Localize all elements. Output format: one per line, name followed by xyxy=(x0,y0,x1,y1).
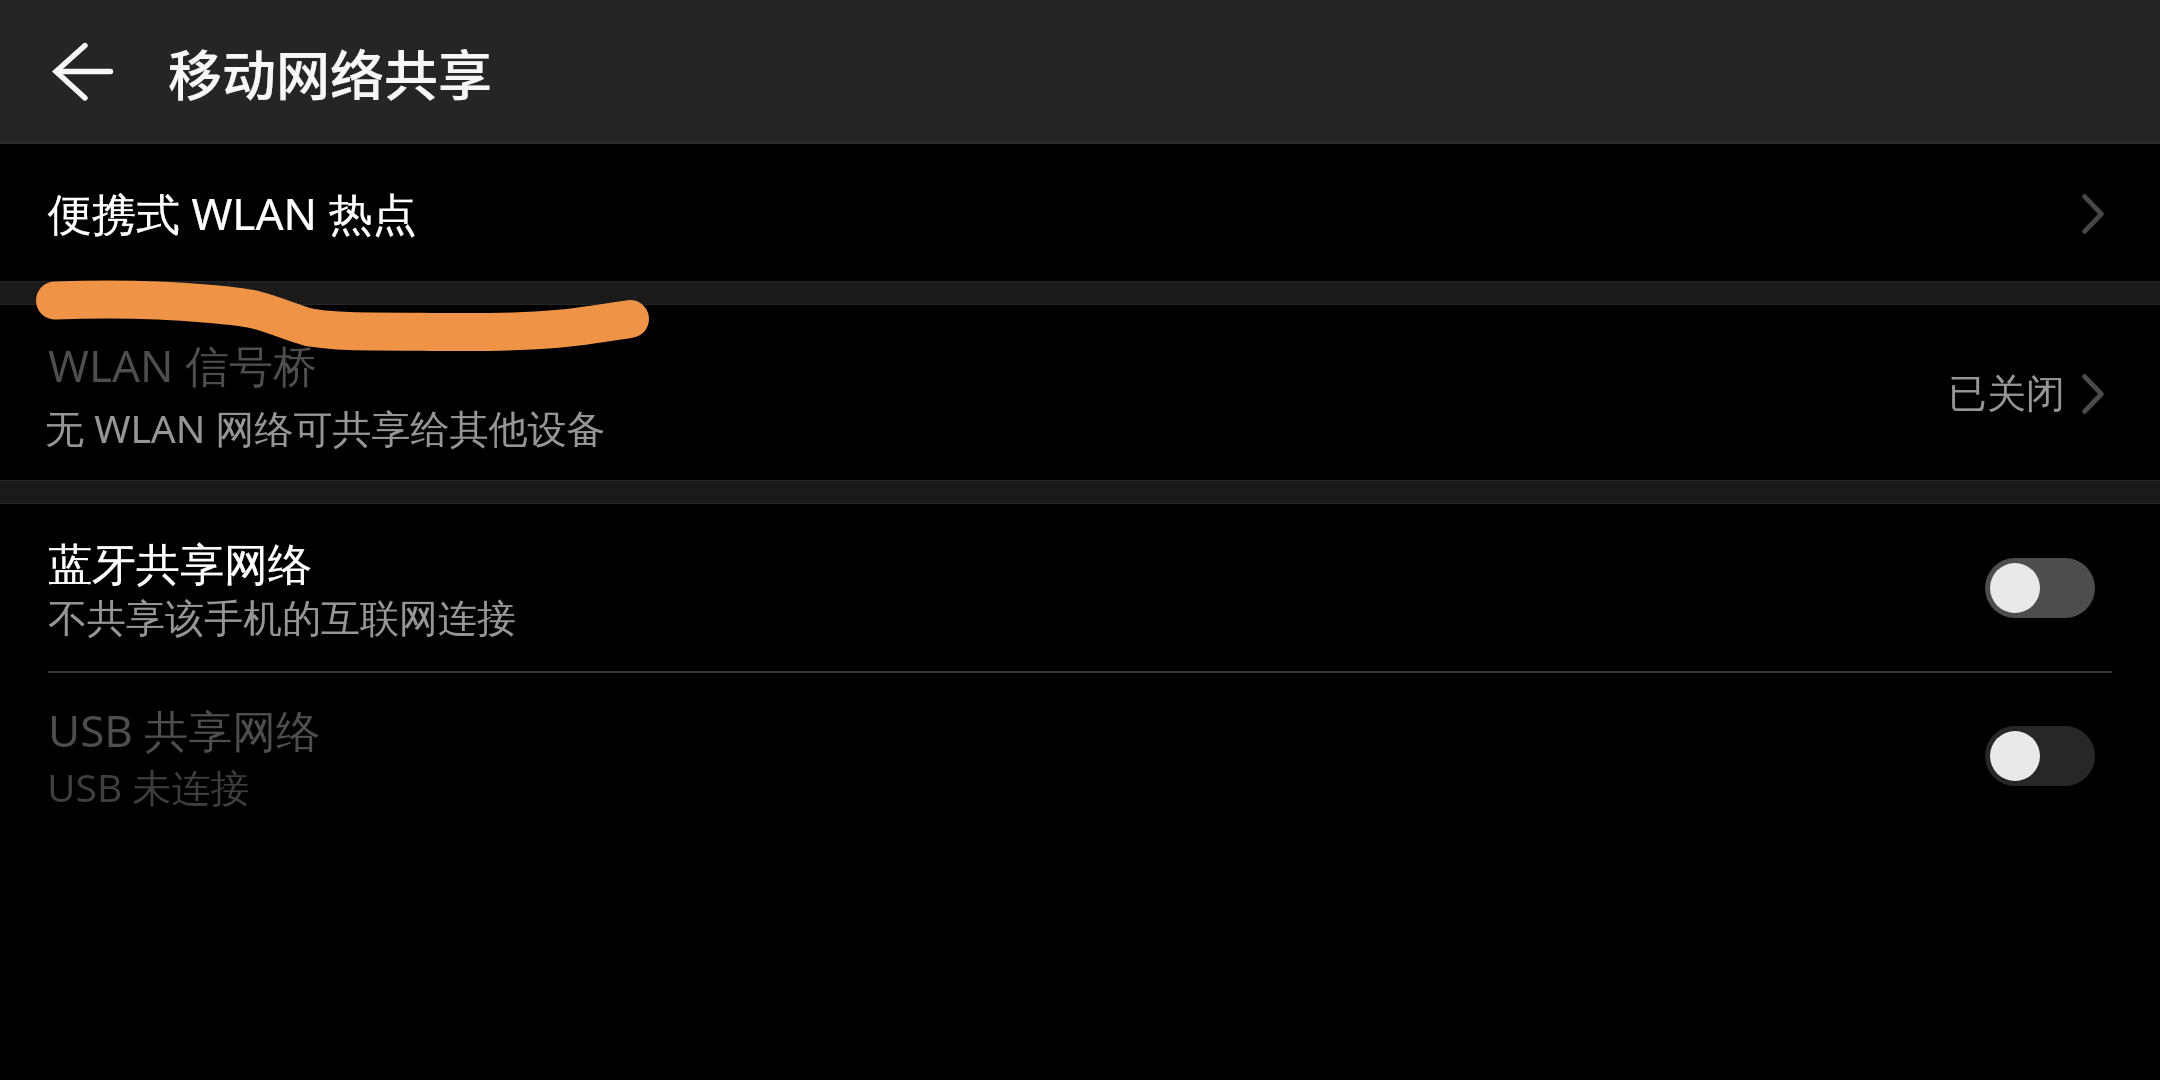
staticText: WLAN 信号桥 xyxy=(48,335,317,395)
staticText: 蓝牙共享网络 xyxy=(48,538,312,593)
staticText: 无 WLAN 网络可共享给其他设备 xyxy=(45,401,606,454)
button[interactable]: Back xyxy=(26,12,146,132)
button[interactable]: Toggle xyxy=(1985,558,2095,618)
staticText: 便携式 WLAN 热点 xyxy=(48,183,417,243)
button[interactable] xyxy=(0,305,2160,480)
staticText: USB 未连接 xyxy=(47,760,250,813)
button[interactable]: Toggle xyxy=(1985,726,2095,786)
staticText: 不共享该手机的互联网连接 xyxy=(48,594,516,643)
button[interactable] xyxy=(0,144,2160,281)
button[interactable] xyxy=(0,504,2160,672)
staticText: 移动网络共享 xyxy=(168,33,492,111)
staticText: 已关闭 xyxy=(1948,369,2065,418)
staticText: USB 共享网络 xyxy=(48,700,321,760)
button[interactable] xyxy=(0,675,2160,840)
